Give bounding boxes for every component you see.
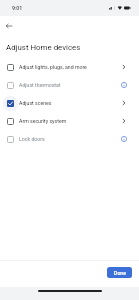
staticText: Done xyxy=(114,270,126,276)
staticText: Arm security system xyxy=(19,118,116,124)
staticText: 9:01 xyxy=(12,5,23,11)
staticText: Adjust Home devices xyxy=(6,43,81,52)
button[interactable]: Adjust scenes xyxy=(0,94,139,112)
button[interactable]: Open xyxy=(116,94,132,112)
staticText: Adjust lights, plugs, and more xyxy=(19,64,116,70)
button[interactable]: Adjust thermostat xyxy=(0,76,139,94)
button[interactable]: Adjust lights, plugs, and more xyxy=(0,58,139,76)
button[interactable]: Info xyxy=(116,130,132,148)
button[interactable]: Done xyxy=(107,267,132,278)
staticText: Adjust thermostat xyxy=(19,82,116,88)
staticText: Lock doors xyxy=(19,136,116,142)
staticText: Adjust scenes xyxy=(19,100,116,106)
button[interactable]: Info xyxy=(116,76,132,94)
button[interactable]: Lock doors xyxy=(0,130,139,148)
button[interactable]: Open xyxy=(116,58,132,76)
button[interactable]: Open xyxy=(116,112,132,130)
button[interactable]: Arm security system xyxy=(0,112,139,130)
button[interactable]: Back xyxy=(1,18,16,33)
